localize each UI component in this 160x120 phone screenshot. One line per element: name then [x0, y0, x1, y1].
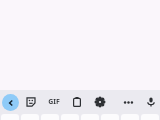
button[interactable]: Back	[2, 94, 19, 111]
staticText: GIF	[48, 97, 60, 107]
button[interactable]: More options	[120, 95, 136, 109]
button[interactable]: Settings	[92, 94, 108, 110]
button[interactable]: Voice input	[143, 94, 159, 110]
button[interactable]: Stickers	[23, 94, 39, 110]
button[interactable]: GIF	[45, 95, 63, 109]
button[interactable]: Clipboard	[69, 94, 85, 110]
